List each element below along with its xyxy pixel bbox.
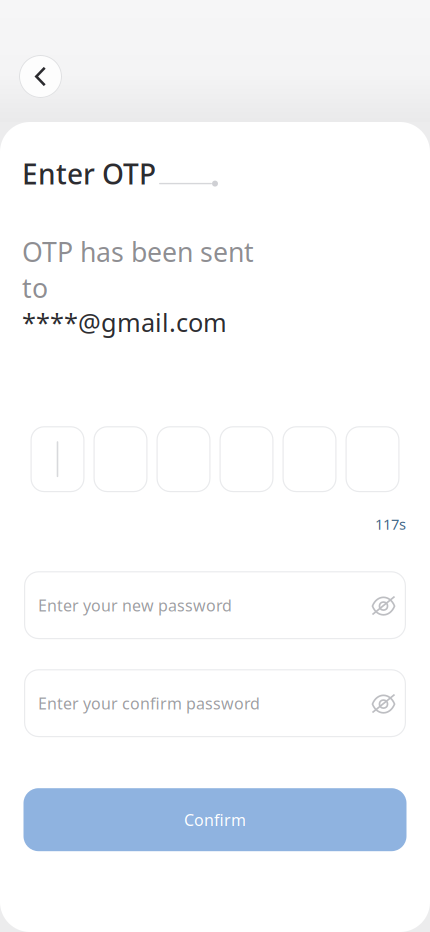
button[interactable]: Confirm: [23, 788, 406, 851]
staticText: Enter your new password: [38, 595, 232, 616]
staticText: Enter OTP: [22, 155, 156, 192]
staticText: 117s: [375, 514, 406, 534]
button[interactable]: Back: [19, 55, 62, 98]
staticText: ****@gmail.com: [22, 305, 227, 339]
staticText: to: [22, 270, 48, 305]
staticText: Confirm: [184, 809, 246, 830]
staticText: Enter your confirm password: [38, 693, 260, 714]
staticText: OTP has been sent: [22, 234, 254, 269]
button[interactable]: Enter your new password: [24, 571, 406, 639]
button[interactable]: Enter your confirm password: [24, 669, 406, 737]
